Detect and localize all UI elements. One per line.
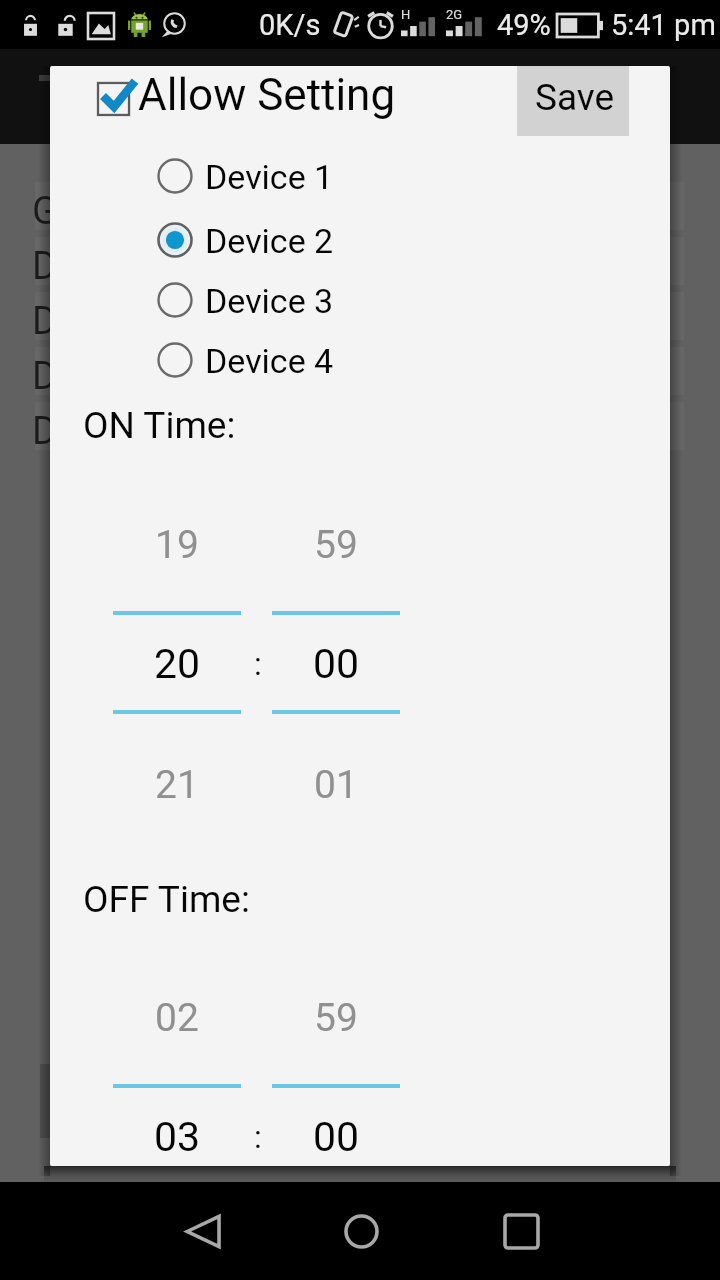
staticText: : (254, 645, 262, 683)
button[interactable]: Device 1 (150, 150, 450, 202)
staticText: Device 1 (205, 157, 334, 197)
staticText: 03 (154, 1113, 201, 1161)
button[interactable]: Device 4 (150, 334, 450, 386)
staticText: 49% (497, 8, 551, 42)
staticText: 59 (314, 522, 358, 568)
staticText: 0K/s (259, 8, 321, 42)
staticText: G (32, 189, 58, 234)
button[interactable]: 00 (272, 1111, 400, 1163)
button[interactable]: 59 (272, 992, 400, 1044)
staticText: 00 (313, 640, 360, 688)
staticText: Device 2 (205, 221, 334, 261)
staticText: 21 (155, 762, 199, 808)
button[interactable]: 21 (113, 759, 241, 811)
button[interactable]: Device 3 (150, 274, 450, 326)
staticText: Device 3 (205, 281, 334, 321)
staticText: D (32, 409, 57, 454)
staticText: D (32, 244, 57, 289)
staticText: Allow Setting (138, 69, 396, 121)
staticText: 20 (154, 640, 201, 688)
staticText: 2G (446, 7, 463, 22)
staticText: Save (535, 76, 615, 119)
button[interactable]: Home (316, 1182, 406, 1280)
button[interactable]: Back (158, 1182, 248, 1280)
staticText: D (32, 299, 57, 344)
button[interactable]: 02 (113, 992, 241, 1044)
staticText: 01 (314, 762, 358, 808)
button[interactable]: Device 2 (150, 214, 450, 266)
button[interactable]: 20 (113, 638, 241, 690)
button[interactable]: 03 (113, 1111, 241, 1163)
staticText: 5:41 pm (611, 8, 716, 42)
staticText: OFF Time: (83, 878, 250, 921)
staticText: 00 (313, 1113, 360, 1161)
staticText: D (32, 354, 57, 399)
button[interactable]: Recent apps (476, 1182, 566, 1280)
staticText: 19 (155, 522, 199, 568)
staticText: Device 4 (205, 341, 334, 381)
staticText: 59 (314, 995, 358, 1041)
staticText: ON Time: (83, 404, 236, 447)
button[interactable]: 01 (272, 759, 400, 811)
button[interactable]: 19 (113, 519, 241, 571)
staticText: H (401, 7, 411, 22)
button[interactable]: Save (517, 66, 629, 136)
staticText: 02 (155, 995, 199, 1041)
button[interactable]: Allow Setting (94, 66, 396, 124)
button[interactable]: 59 (272, 519, 400, 571)
staticText: : (254, 1118, 262, 1156)
button[interactable]: 00 (272, 638, 400, 690)
